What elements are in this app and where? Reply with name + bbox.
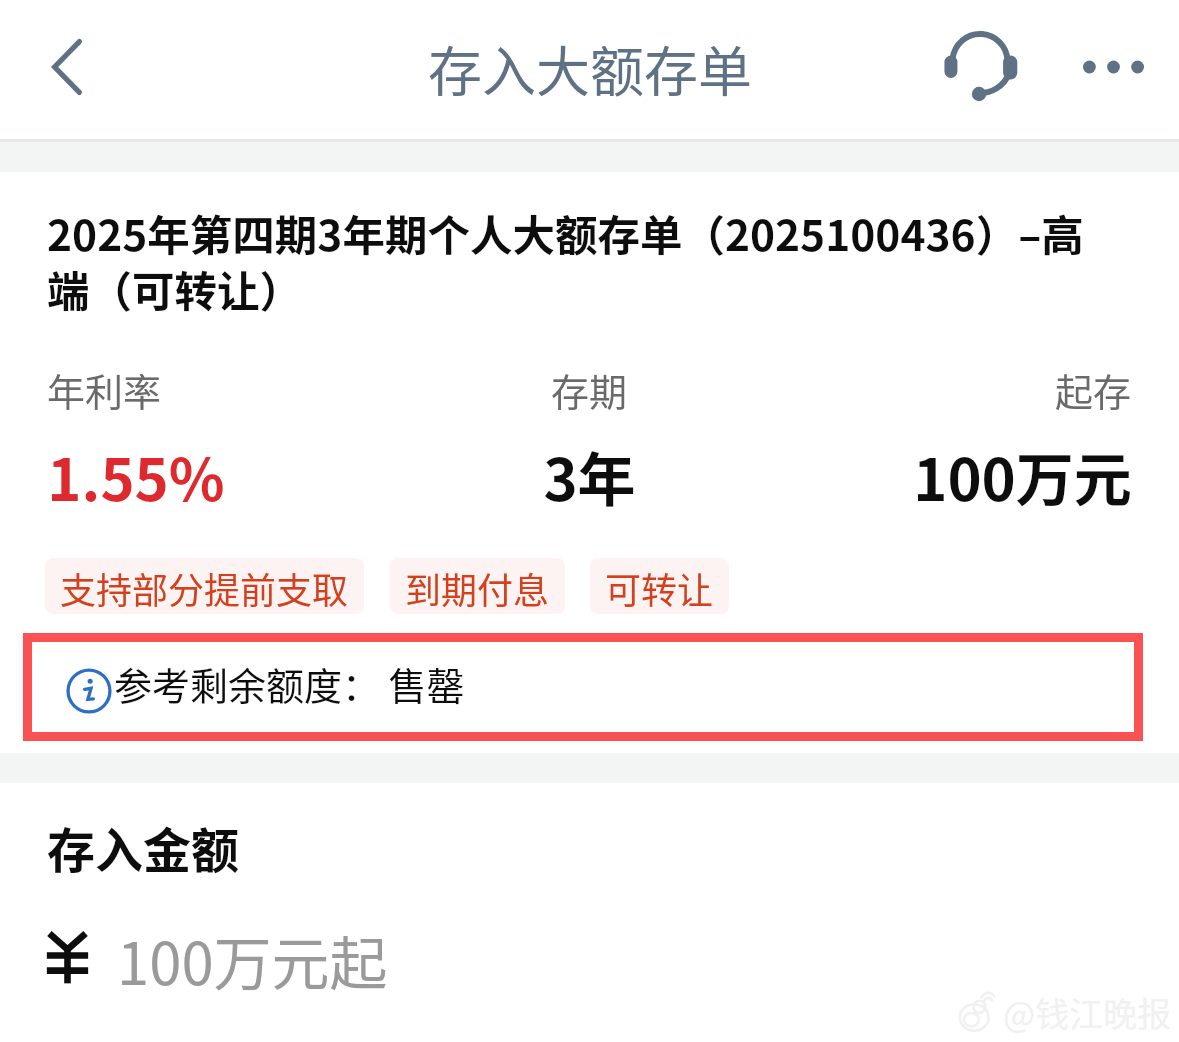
button[interactable]: Customer service <box>929 15 1033 119</box>
staticText: 参考剩余额度： 售罄 <box>114 656 465 711</box>
staticText: 存期 <box>551 362 628 417</box>
button[interactable]: 2025年第四期3年期个人大额存单（2025100436）–高端（可转让） <box>0 202 1179 319</box>
button[interactable]: Back <box>52 36 124 98</box>
button[interactable]: 可转让 <box>590 558 729 614</box>
staticText: 年利率 <box>47 362 162 417</box>
staticText: 1.55% <box>47 434 225 518</box>
staticText: 存入金额 <box>47 812 240 882</box>
staticText: 支持部分提前支取 <box>60 562 349 614</box>
button[interactable]: More options <box>1063 17 1163 117</box>
staticText: 100万元 <box>913 434 1132 518</box>
staticText: 3年 <box>543 434 636 518</box>
button[interactable]: 到期付息 <box>390 558 565 614</box>
staticText: 存入大额存单 <box>428 29 752 107</box>
staticText: 到期付息 <box>405 562 550 614</box>
button[interactable]: 100万元起 <box>0 930 1179 1014</box>
staticText: @钱江晚报 <box>1003 988 1172 1037</box>
staticText: 100万元起 <box>117 918 388 1002</box>
staticText: 起存 <box>1055 362 1132 417</box>
button[interactable]: 参考剩余额度： 售罄 <box>32 642 1134 732</box>
staticText: 可转让 <box>605 562 714 614</box>
staticText: 2025年第四期3年期个人大额存单（2025100436）–高端（可转让） <box>47 202 1087 319</box>
button[interactable]: 支持部分提前支取 <box>45 558 364 614</box>
